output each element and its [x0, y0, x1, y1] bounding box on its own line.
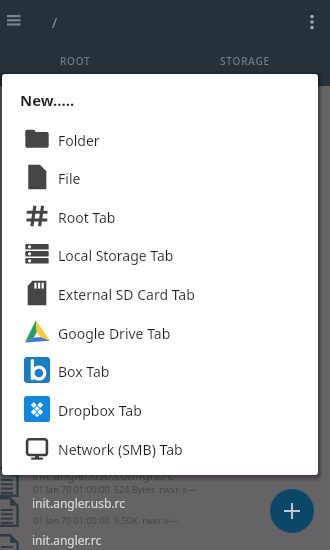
button[interactable]: Box Tab — [2, 351, 318, 390]
staticText: init.angler.usb.rc — [32, 495, 126, 511]
staticText: Google Drive Tab — [58, 324, 171, 343]
button[interactable] — [7, 15, 21, 26]
staticText: Root Tab — [58, 208, 116, 227]
button[interactable]: STORAGE — [185, 48, 305, 74]
staticText: init.angler.usb.configfs.rc — [32, 467, 174, 483]
button[interactable]: init.angler.usb.rc — [0, 494, 330, 530]
button[interactable]: init.angler.usb.configfs.rc — [0, 466, 330, 502]
staticText: External SD Card Tab — [58, 285, 195, 304]
staticText: Folder — [58, 131, 100, 150]
staticText: / — [52, 13, 58, 32]
button[interactable]: Google Drive Tab — [2, 313, 318, 352]
staticText: Dropbox Tab — [58, 401, 142, 420]
staticText: ROOT — [60, 54, 91, 68]
button[interactable]: ROOT — [15, 48, 135, 74]
button[interactable] — [306, 14, 318, 30]
button[interactable]: init.angler.rc — [0, 531, 330, 550]
staticText: New..... — [20, 90, 75, 110]
button[interactable]: External SD Card Tab — [2, 274, 318, 313]
staticText: 01 Jan 70 01:00:00 524 Bytes rwxr-x— — [33, 483, 196, 495]
button[interactable]: Local Storage Tab — [2, 235, 318, 274]
button[interactable]: File — [2, 158, 318, 197]
staticText: init.angler.rc — [32, 532, 102, 548]
button[interactable]: Root Tab — [2, 197, 318, 236]
staticText: Box Tab — [58, 362, 110, 381]
button[interactable]: Network (SMB) Tab — [2, 429, 318, 468]
staticText: Local Storage Tab — [58, 246, 174, 265]
button[interactable]: Folder — [2, 120, 318, 159]
button[interactable] — [270, 489, 314, 533]
staticText: STORAGE — [220, 54, 270, 68]
staticText: File — [58, 169, 81, 188]
staticText: 01 Jan 70 01:00:00 9.50K rwxr-x— — [33, 514, 179, 526]
button[interactable]: Dropbox Tab — [2, 390, 318, 429]
staticText: Network (SMB) Tab — [58, 440, 183, 459]
